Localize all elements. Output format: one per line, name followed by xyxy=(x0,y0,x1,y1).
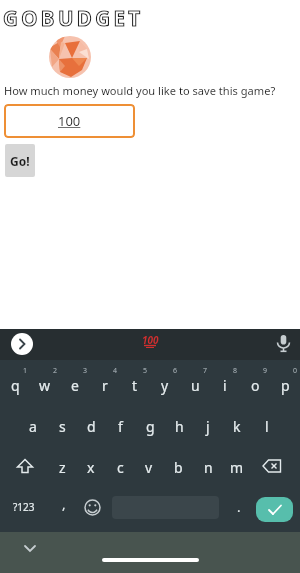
button[interactable]: i xyxy=(210,373,240,397)
button[interactable]: s xyxy=(47,414,77,438)
staticText: j xyxy=(206,417,210,436)
button[interactable]: . xyxy=(224,496,254,518)
button[interactable]: d xyxy=(76,414,106,438)
staticText: z xyxy=(59,458,66,477)
staticText: c xyxy=(117,458,124,477)
button[interactable]: f xyxy=(105,414,135,438)
button[interactable]: w xyxy=(30,373,60,397)
staticText: v xyxy=(145,458,153,477)
button[interactable]: l xyxy=(252,414,282,438)
button[interactable] xyxy=(11,333,33,355)
button[interactable]: m xyxy=(222,455,252,479)
button[interactable]: p xyxy=(270,373,300,397)
staticText: 0 xyxy=(293,366,298,376)
staticText: y xyxy=(161,376,169,395)
staticText: x xyxy=(87,458,95,477)
button[interactable]: h xyxy=(164,414,194,438)
button[interactable]: n xyxy=(193,455,223,479)
button[interactable]: 100 xyxy=(141,334,161,348)
staticText: i xyxy=(223,376,227,395)
staticText: n xyxy=(204,458,213,477)
button[interactable]: x xyxy=(76,455,106,479)
staticText: q xyxy=(11,376,20,395)
button[interactable] xyxy=(275,334,292,353)
staticText: 5 xyxy=(143,366,148,376)
button[interactable]: 100 xyxy=(4,104,135,138)
button[interactable]: Go! xyxy=(5,144,35,177)
button[interactable] xyxy=(16,458,34,474)
staticText: Go! xyxy=(10,153,30,169)
button[interactable] xyxy=(262,459,282,473)
staticText: , xyxy=(62,495,66,513)
staticText: 3 xyxy=(83,366,88,376)
staticText: f xyxy=(118,417,123,436)
staticText: s xyxy=(59,417,66,436)
button[interactable]: c xyxy=(105,455,135,479)
staticText: ?123 xyxy=(13,500,35,514)
staticText: w xyxy=(39,376,51,395)
staticText: . xyxy=(237,498,241,516)
staticText: l xyxy=(265,417,269,436)
button[interactable]: g xyxy=(135,414,165,438)
button[interactable]: j xyxy=(193,414,223,438)
button[interactable]: q xyxy=(0,373,30,397)
button[interactable] xyxy=(23,544,37,553)
button[interactable]: k xyxy=(222,414,252,438)
button[interactable]: r xyxy=(90,373,120,397)
staticText: m xyxy=(230,458,244,477)
staticText: g xyxy=(146,417,155,436)
staticText: How much money would you like to save th… xyxy=(4,83,276,98)
staticText: b xyxy=(174,458,183,477)
staticText: h xyxy=(175,417,184,436)
staticText: p xyxy=(281,376,290,395)
button[interactable]: , xyxy=(49,493,79,515)
staticText: 6 xyxy=(173,366,178,376)
button[interactable]: ?123 xyxy=(7,496,41,518)
button[interactable]: b xyxy=(163,455,193,479)
staticText: t xyxy=(132,376,138,395)
staticText: k xyxy=(233,417,241,436)
staticText: 1 xyxy=(23,366,28,376)
button[interactable]: u xyxy=(180,373,210,397)
staticText: r xyxy=(102,376,108,395)
button[interactable]: a xyxy=(18,414,48,438)
staticText: 8 xyxy=(233,366,238,376)
button[interactable]: e xyxy=(60,373,90,397)
staticText: e xyxy=(71,376,79,395)
button[interactable]: t xyxy=(120,373,150,397)
staticText: 100 xyxy=(142,333,159,347)
staticText: 4 xyxy=(113,366,118,376)
staticText: o xyxy=(251,376,260,395)
button[interactable]: v xyxy=(134,455,164,479)
staticText: d xyxy=(87,417,96,436)
staticText: 100 xyxy=(58,112,81,130)
staticText: 2 xyxy=(53,366,58,376)
staticText: 9 xyxy=(263,366,268,376)
staticText: a xyxy=(29,417,37,436)
button[interactable]: y xyxy=(150,373,180,397)
button[interactable]: o xyxy=(240,373,270,397)
staticText: 7 xyxy=(203,366,208,376)
staticText: GOBUDGET xyxy=(3,4,144,32)
button[interactable] xyxy=(84,499,101,516)
staticText: u xyxy=(191,376,200,395)
button[interactable]: z xyxy=(47,455,77,479)
button[interactable] xyxy=(256,497,293,522)
